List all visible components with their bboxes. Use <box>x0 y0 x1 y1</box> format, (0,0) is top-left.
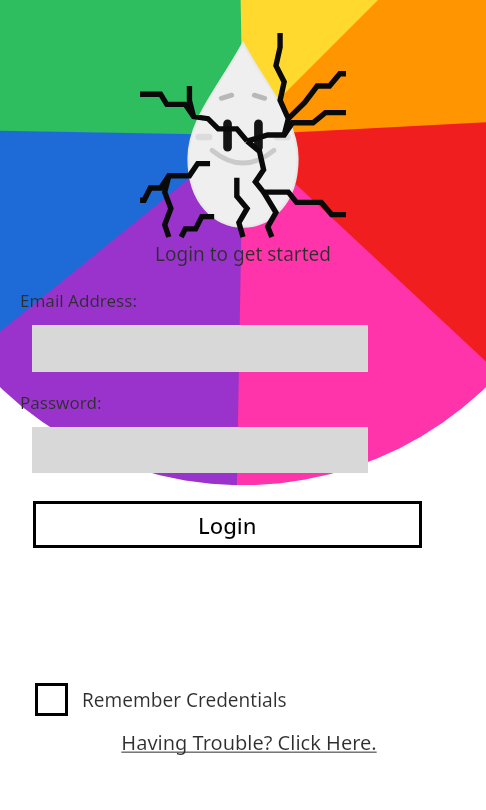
staticText: Login <box>198 510 257 540</box>
staticText: Password: <box>20 391 102 414</box>
staticText: Remember Credentials <box>82 687 287 713</box>
button[interactable]: Remember Credentials <box>35 683 287 716</box>
button[interactable]: Login <box>33 501 422 548</box>
staticText: Email Address: <box>20 289 137 312</box>
staticText: Login to get started <box>155 241 331 267</box>
button[interactable]: Having Trouble? Click Here. <box>121 729 377 756</box>
